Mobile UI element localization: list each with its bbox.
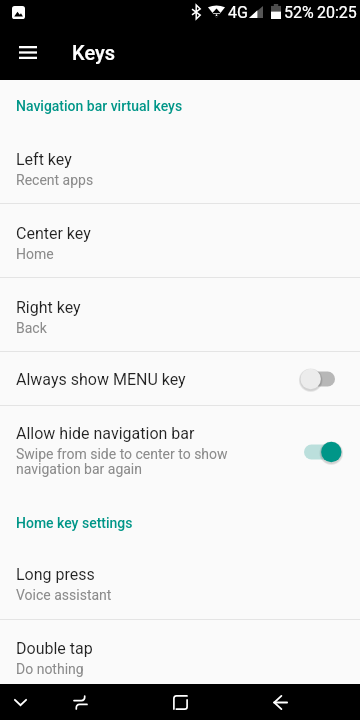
staticText: Double tap (16, 639, 93, 658)
button[interactable]: Left key (0, 130, 360, 203)
staticText: Recent apps (16, 172, 94, 188)
staticText: Right key (16, 298, 81, 317)
button[interactable]: Navigation bar virtual keys (0, 80, 360, 130)
staticText: Back (16, 320, 47, 336)
staticText: Home key settings (16, 515, 133, 531)
staticText: 20:25 (317, 3, 357, 22)
staticText: Home (16, 246, 54, 262)
button[interactable]: Long press (0, 545, 360, 619)
button[interactable]: Allow hide navigation bar (0, 406, 360, 497)
staticText: 52% (284, 3, 314, 22)
staticText: Navigation bar virtual keys (16, 98, 183, 114)
button[interactable]: Disabled (298, 363, 340, 395)
button[interactable]: Recent apps (162, 684, 198, 720)
button[interactable]: Hide keyboard (2, 684, 38, 720)
button[interactable]: Always show MENU key (0, 352, 360, 405)
staticText: 4G (228, 3, 248, 22)
staticText: Always show MENU key (16, 370, 186, 389)
staticText: Long press (16, 565, 95, 584)
staticText: Do nothing (16, 661, 84, 677)
button[interactable]: Switch input method (62, 684, 98, 720)
staticText: Left key (16, 150, 72, 169)
staticText: Allow hide navigation bar (16, 424, 195, 443)
button[interactable]: Center key (0, 204, 360, 277)
staticText: Center key (16, 224, 91, 243)
staticText: Voice assistant (16, 587, 112, 603)
staticText: Keys (72, 41, 116, 64)
button[interactable]: Back (262, 684, 298, 720)
button[interactable]: Home key settings (0, 497, 360, 545)
staticText: Swipe from side to center to show naviga… (16, 446, 228, 478)
button[interactable]: Enabled (298, 436, 340, 468)
button[interactable]: Right key (0, 278, 360, 351)
button[interactable]: Open navigation drawer (0, 24, 56, 80)
button[interactable]: Double tap (0, 620, 360, 684)
